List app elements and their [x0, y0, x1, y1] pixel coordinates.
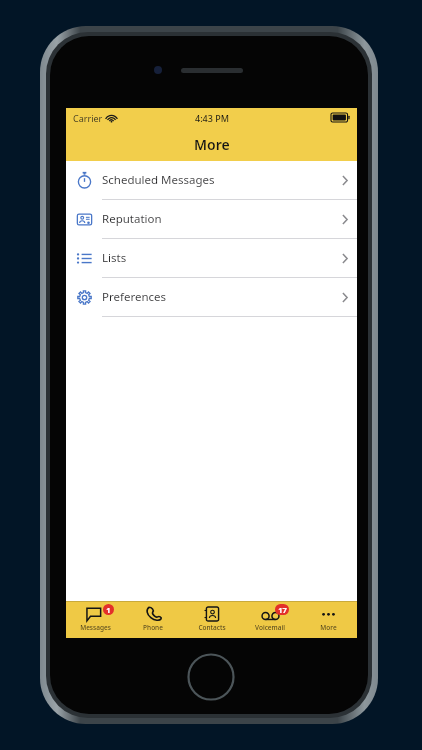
button[interactable]: Voicemail	[241, 602, 299, 638]
staticText: 4:43 PM	[195, 112, 229, 124]
staticText: More	[320, 623, 337, 632]
staticText: Contacts	[198, 623, 226, 632]
staticText: Phone	[143, 623, 163, 632]
button[interactable]: More	[299, 602, 357, 638]
button[interactable]: Scheduled Messages	[66, 161, 357, 199]
button[interactable]: Contacts	[183, 602, 241, 638]
button[interactable]: Lists	[66, 239, 357, 277]
button[interactable]: Reputation	[66, 200, 357, 238]
staticText: Messages	[80, 623, 111, 632]
button[interactable]: Messages	[66, 602, 124, 638]
staticText: Lists	[102, 250, 333, 266]
staticText: Preferences	[102, 289, 333, 305]
staticText: Reputation	[102, 211, 333, 227]
staticText: Scheduled Messages	[102, 172, 333, 188]
staticText: Carrier	[73, 112, 103, 124]
staticText: 17	[278, 605, 287, 615]
staticText: Voicemail	[255, 623, 285, 632]
button[interactable]: Preferences	[66, 278, 357, 316]
staticText: 1	[106, 605, 111, 615]
staticText: More	[194, 135, 230, 154]
button[interactable]: Phone	[124, 602, 182, 638]
